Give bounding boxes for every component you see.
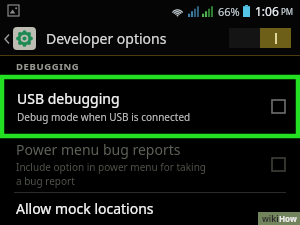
staticText: Include option in power menu for taking xyxy=(16,160,206,174)
button[interactable]: Allow mock locations xyxy=(0,193,300,223)
staticText: a bug report xyxy=(16,174,75,188)
button[interactable]: Power menu bug reports xyxy=(0,136,300,192)
staticText: 1:06 xyxy=(255,3,279,19)
staticText: 66% xyxy=(218,4,240,19)
button[interactable]: USB debugging xyxy=(2,77,298,136)
staticText: USB debugging xyxy=(17,89,120,108)
staticText: Power menu bug reports xyxy=(16,140,181,159)
button[interactable]: Navigate up xyxy=(0,27,38,50)
staticText: PM xyxy=(281,6,294,17)
staticText: wiki xyxy=(262,213,279,224)
staticText: Allow mock locations xyxy=(16,199,154,218)
staticText: Developer options xyxy=(46,29,167,48)
staticText: DEBUGGING xyxy=(16,60,80,73)
staticText: How xyxy=(279,213,297,224)
button[interactable]: Developer options on/off xyxy=(229,28,291,48)
staticText: Debug mode when USB is connected xyxy=(17,110,191,124)
